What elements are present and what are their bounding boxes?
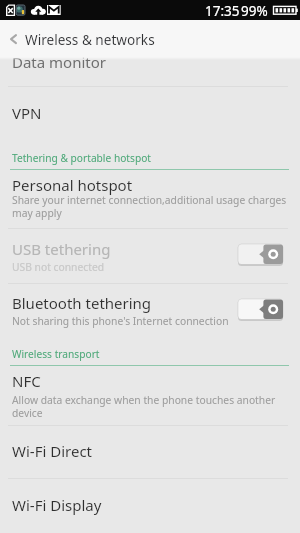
staticText: Wireless transport	[12, 347, 100, 361]
button[interactable]	[0, 371, 300, 423]
staticText: Not sharing this phone's Internet connec…	[12, 314, 229, 328]
button[interactable]	[0, 430, 300, 475]
staticText: Wi-Fi Display	[12, 495, 102, 515]
staticText: NFC	[12, 371, 41, 391]
staticText: Personal hotspot	[12, 175, 133, 195]
staticText: Tethering & portable hotspot	[12, 151, 152, 165]
staticText: USB not connected	[12, 260, 105, 274]
staticText: USB tethering	[12, 239, 111, 259]
staticText: 17:35	[205, 2, 240, 20]
staticText: Wi-Fi Direct	[12, 441, 92, 461]
staticText: Wireless & networks	[25, 30, 155, 49]
staticText: VPN	[12, 103, 42, 123]
staticText: Bluetooth tethering	[12, 293, 152, 313]
button[interactable]	[0, 173, 300, 225]
button[interactable]: Toggle switch	[234, 295, 288, 325]
button[interactable]: Toggle switch	[234, 240, 288, 270]
button[interactable]	[0, 100, 300, 126]
button[interactable]	[0, 482, 300, 527]
staticText: Share your internet connection,additiona…	[12, 193, 287, 220]
staticText: Allow data exchange when the phone touch…	[12, 393, 276, 420]
staticText: Data monitor	[12, 52, 107, 72]
button[interactable]: Back	[0, 24, 26, 54]
staticText: 99%	[241, 2, 268, 20]
button[interactable]	[0, 290, 300, 336]
button[interactable]	[0, 235, 300, 281]
